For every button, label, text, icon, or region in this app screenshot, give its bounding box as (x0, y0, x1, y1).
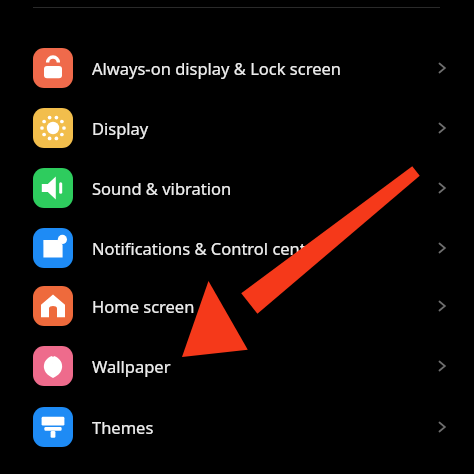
button[interactable]: Notifications & Control centre (0, 220, 474, 276)
other: Home screen (424, 278, 460, 334)
other: Display (424, 100, 460, 156)
staticText: Wallpaper (92, 355, 424, 377)
button[interactable]: Wallpaper (0, 338, 474, 394)
staticText: Always-on display & Lock screen (92, 57, 424, 79)
other: Always-on display & Lock screen (424, 40, 460, 96)
staticText: Notifications & Control centre (92, 237, 424, 259)
other: Notifications & Control centre (424, 220, 460, 276)
button[interactable]: Sound & vibration (0, 160, 474, 216)
other: Wallpaper (424, 338, 460, 394)
button[interactable]: Home screen (0, 278, 474, 334)
button[interactable]: Always-on display & Lock screen (0, 40, 474, 96)
staticText: Display (92, 117, 424, 139)
staticText: Sound & vibration (92, 177, 424, 199)
button[interactable]: Themes (0, 399, 474, 455)
button[interactable]: Display (0, 100, 474, 156)
staticText: Themes (92, 416, 424, 438)
staticText: Home screen (92, 295, 424, 317)
other: Sound & vibration (424, 160, 460, 216)
other: Themes (424, 399, 460, 455)
